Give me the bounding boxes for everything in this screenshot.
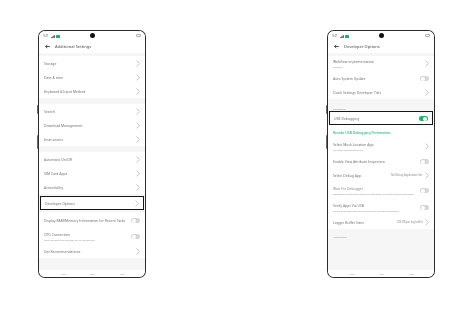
button[interactable]: Developer Options [40,196,144,210]
staticText: Select Mock Location App [333,142,374,147]
button[interactable]: Back [44,43,51,50]
staticText: Accessibility [44,185,64,190]
button[interactable]: Navigation button [86,271,98,277]
button[interactable]: OTG Connection [39,228,145,244]
staticText: Verify Apps Via USB [333,203,365,208]
staticText: No mock location app set [333,148,363,151]
staticText: Additional Settings [55,44,92,49]
staticText: OTG Connection [44,232,70,237]
staticText: Debugged application waits for debugger … [333,192,414,195]
button[interactable]: Keyboard & Input Method [39,84,145,98]
button[interactable]: Navigation button [116,271,128,277]
button[interactable]: Navigation button [57,271,69,277]
staticText: Date & time [44,75,63,80]
button[interactable]: Revoke USB Debugging Permissions [328,125,434,139]
staticText: SIM Card Apps [44,171,68,176]
staticText: Keyboard & Input Method [44,89,86,94]
button[interactable]: Download Management [39,118,145,132]
button[interactable]: Automatic On/Off [39,152,145,166]
staticText: Download Management [44,123,83,128]
staticText: Auto System Update [333,76,366,81]
staticText: Select Debug App [333,173,362,178]
staticText: Quick Settings Developer Tiles [333,90,382,95]
staticText: No Debug Application Set [391,173,423,177]
staticText: 256 KB per log buffer [397,220,423,224]
staticText: Chrome [333,65,343,68]
staticText: Developer Options [344,44,380,49]
staticText: Storage [44,61,57,66]
staticText: Revoke USB Debugging Permissions [333,130,391,135]
button[interactable]: Navigation button [346,271,358,277]
button[interactable]: Get Recommendations [39,244,145,258]
staticText: Debugging [333,107,347,110]
button[interactable]: Navigation button [375,271,387,277]
button[interactable]: Logger Buffer Sizes [328,215,434,229]
staticText: Enable View Attribute Inspection [333,159,385,164]
button[interactable]: Display RAM/Memory Information for Recen… [39,212,145,228]
button[interactable]: Quick Settings Developer Tiles [328,85,434,99]
button[interactable]: Search [39,104,145,118]
button[interactable]: Enable View Attribute Inspection [328,154,434,168]
button[interactable]: USB Debugging [329,111,433,125]
staticText: Logger Buffer Sizes [333,220,364,225]
button[interactable]: Wait For Debugger [328,182,434,199]
staticText: Auto off after ten minutes of no connect… [44,238,95,241]
staticText: Wait For Debugger [333,186,364,191]
staticText: Instructions [44,137,64,142]
button[interactable]: SIM Card Apps [39,166,145,180]
staticText: Networking [333,235,347,238]
staticText: WebView implementation [333,59,374,64]
staticText: Search [44,109,55,114]
staticText: 9:41 [43,34,49,38]
button[interactable]: Verify Apps Via USB [328,199,434,215]
button[interactable]: Accessibility [39,180,145,194]
staticText: Get Recommendations [44,249,81,254]
staticText: Developer Options [45,201,75,206]
button[interactable]: Date & time [39,70,145,84]
button[interactable]: Storage [39,56,145,70]
staticText: Automatic On/Off [44,157,73,162]
button[interactable]: Navigation button [405,271,417,277]
button[interactable]: Instructions [39,132,145,146]
button[interactable]: Select Debug App [328,168,434,182]
button[interactable]: WebView implementation [328,56,434,71]
button[interactable]: Select Mock Location App [328,139,434,154]
button[interactable]: Auto System Update [328,71,434,85]
staticText: Display RAM/Memory Information for Recen… [44,218,126,223]
staticText: USB Debugging [334,116,360,121]
staticText: 9:41 [332,34,338,38]
button[interactable]: Back [333,43,340,50]
staticText: Check apps installed via ADB/ADT for har… [333,209,399,212]
